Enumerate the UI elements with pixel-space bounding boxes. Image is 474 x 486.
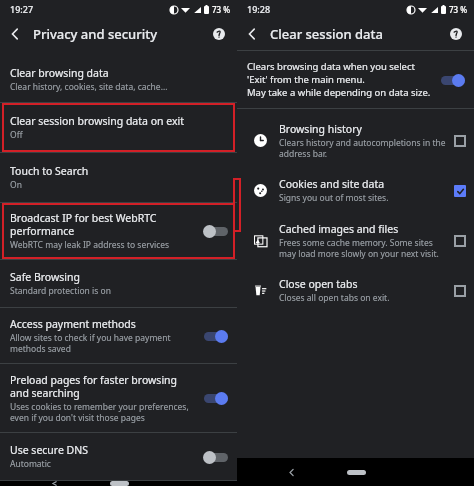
staticText: Clears browsing data when you select 'Ex… xyxy=(247,60,434,99)
button[interactable]: Close open tabs xyxy=(237,268,474,313)
button[interactable]: Help xyxy=(207,22,231,46)
button[interactable]: Back xyxy=(0,19,30,49)
staticText: Clear session data xyxy=(270,25,383,43)
staticText: Signs you out of most sites. xyxy=(279,192,389,204)
button[interactable]: Clear browsing data xyxy=(0,57,237,102)
staticText: 19:28 xyxy=(247,3,271,15)
button[interactable]: Browsing history xyxy=(237,113,474,168)
staticText: Off xyxy=(10,129,23,141)
staticText: 73 % xyxy=(212,4,231,15)
staticText: Safe Browsing xyxy=(10,270,80,284)
button[interactable]: Cookies and site data xyxy=(237,168,474,213)
staticText: Broadcast IP for best WebRTC performance xyxy=(10,211,197,238)
staticText: 19:27 xyxy=(10,3,34,15)
staticText: Privacy and security xyxy=(33,25,158,43)
staticText: Clear session browsing data on exit xyxy=(10,114,185,128)
staticText: Closes all open tabs on exit. xyxy=(279,292,390,304)
staticText: Browsing history xyxy=(279,122,362,136)
staticText: Uses cookies to remember your preference… xyxy=(10,401,197,423)
staticText: Use secure DNS xyxy=(10,443,89,457)
button[interactable]: Help xyxy=(444,22,468,46)
button[interactable]: Clears browsing data when you select 'Ex… xyxy=(237,51,474,108)
button[interactable]: Use secure DNS xyxy=(0,433,237,480)
staticText: Close open tabs xyxy=(279,277,358,291)
button[interactable]: Cached images and files xyxy=(237,213,474,268)
staticText: Access payment methods xyxy=(10,317,136,331)
staticText: Allow sites to check if you have payment… xyxy=(10,332,197,354)
staticText: Cookies and site data xyxy=(279,177,385,191)
button[interactable]: Back xyxy=(44,481,64,486)
button[interactable]: Safe Browsing xyxy=(0,260,237,307)
staticText: Cached images and files xyxy=(279,222,399,236)
staticText: Standard protection is on xyxy=(10,285,111,297)
staticText: 73 % xyxy=(449,4,468,15)
staticText: Automatic xyxy=(10,458,51,470)
button[interactable]: Access payment methods xyxy=(0,308,237,363)
button[interactable]: Preload pages for faster browsing and se… xyxy=(0,364,237,432)
staticText: Preload pages for faster browsing and se… xyxy=(10,373,197,400)
button[interactable]: Back xyxy=(281,462,301,482)
staticText: On xyxy=(10,179,22,191)
button[interactable]: Back xyxy=(237,19,267,49)
button[interactable]: Home xyxy=(336,463,376,481)
staticText: WebRTC may leak IP address to services xyxy=(10,239,170,251)
button[interactable]: Home xyxy=(99,481,139,486)
staticText: Clear browsing data xyxy=(10,66,109,80)
staticText: Clears history and autocompletions in th… xyxy=(279,137,448,159)
staticText: Clear history, cookies, site data, cache… xyxy=(10,81,168,93)
button[interactable]: Broadcast IP for best WebRTC performance xyxy=(0,203,237,259)
button[interactable]: Touch to Search xyxy=(0,153,237,202)
staticText: Touch to Search xyxy=(10,164,89,178)
button[interactable]: Clear session browsing data on exit xyxy=(0,103,237,152)
staticText: Frees some cache memory. Some sites may … xyxy=(279,237,448,259)
